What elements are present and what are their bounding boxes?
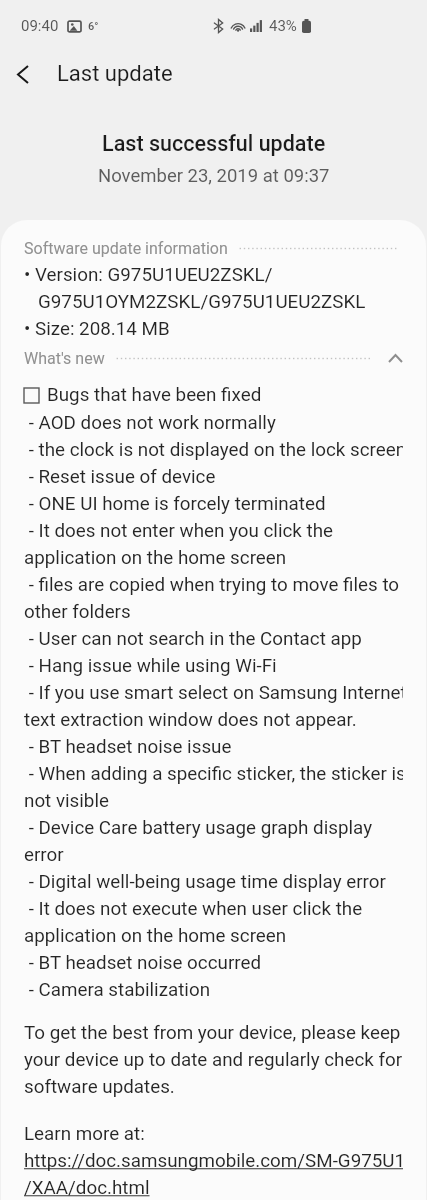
staticText: Learn more at: https://doc.samsungmobile… (24, 1123, 403, 1199)
button[interactable]: Back (0, 52, 46, 96)
staticText: Software update information (24, 239, 228, 258)
button[interactable]: What's new (24, 349, 403, 368)
staticText: 6° (88, 20, 99, 33)
staticText: 43% (269, 17, 297, 35)
staticText: • Version: G975U1UEU2ZSKL/ G975U1OYM2ZSK… (24, 264, 366, 340)
staticText: Bugs that have been fixed (47, 384, 262, 406)
staticText: November 23, 2019 at 09:37 (98, 165, 330, 187)
staticText: Last update (57, 61, 173, 87)
staticText: To get the best from your device, please… (24, 1022, 403, 1098)
staticText: - AOD does not work normally - the clock… (24, 412, 403, 1001)
button[interactable]: Learn more at: https://doc.samsungmobile… (24, 1123, 403, 1199)
staticText: 09:40 (21, 17, 59, 35)
staticText: What's new (24, 349, 105, 368)
staticText: Last successful update (102, 131, 326, 156)
